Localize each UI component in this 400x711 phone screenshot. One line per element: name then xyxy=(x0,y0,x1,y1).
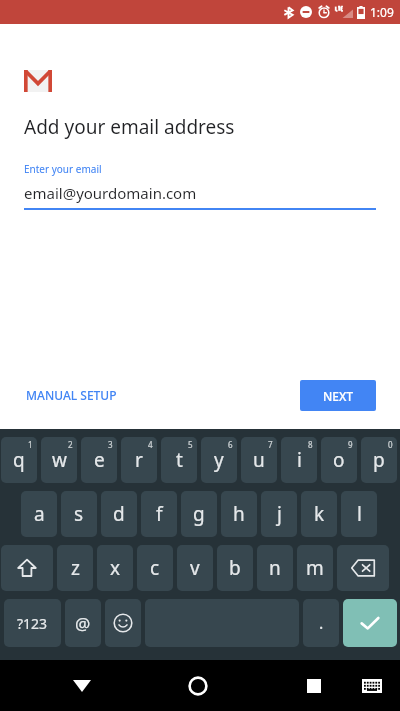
button[interactable]: . xyxy=(303,599,339,647)
staticText: 2 xyxy=(68,439,73,450)
staticText: q xyxy=(13,447,25,473)
button[interactable]: k xyxy=(301,491,337,537)
button[interactable]: Switch keyboard xyxy=(352,666,392,706)
staticText: 8 xyxy=(308,439,313,450)
staticText: o xyxy=(333,447,345,473)
button[interactable]: w xyxy=(41,437,77,483)
button[interactable]: p xyxy=(361,437,397,483)
staticText: @ xyxy=(75,612,91,635)
button[interactable]: s xyxy=(61,491,97,537)
staticText: 3 xyxy=(108,439,113,450)
staticText: z xyxy=(71,555,80,581)
staticText: 1:09 xyxy=(370,4,394,20)
button[interactable]: y xyxy=(201,437,237,483)
button[interactable]: l xyxy=(341,491,377,537)
staticText: m xyxy=(306,555,324,581)
button[interactable]: j xyxy=(261,491,297,537)
button[interactable]: ?123 xyxy=(4,599,61,647)
button[interactable]: c xyxy=(137,545,173,591)
button[interactable]: x xyxy=(97,545,133,591)
button[interactable]: Shift xyxy=(1,545,53,591)
staticText: b xyxy=(229,555,241,581)
staticText: y xyxy=(214,447,224,473)
button[interactable]: Enter your email xyxy=(24,162,376,210)
button[interactable]: e xyxy=(81,437,117,483)
staticText: 9 xyxy=(348,439,353,450)
staticText: v xyxy=(190,555,200,581)
button[interactable]: m xyxy=(297,545,333,591)
staticText: n xyxy=(269,555,281,581)
staticText: 5 xyxy=(188,439,193,450)
button[interactable]: h xyxy=(221,491,257,537)
button[interactable]: r xyxy=(121,437,157,483)
staticText: t xyxy=(176,447,183,473)
staticText: NEXT xyxy=(323,388,354,404)
button[interactable]: Back xyxy=(58,662,106,710)
staticText: x xyxy=(110,555,121,581)
button[interactable]: n xyxy=(257,545,293,591)
staticText: k xyxy=(314,501,325,527)
staticText: s xyxy=(74,501,84,527)
button[interactable]: b xyxy=(217,545,253,591)
staticText: 1 xyxy=(28,439,33,450)
button[interactable]: f xyxy=(141,491,177,537)
button[interactable]: a xyxy=(21,491,57,537)
button[interactable]: v xyxy=(177,545,213,591)
staticText: . xyxy=(319,612,324,634)
staticText: f xyxy=(156,501,163,527)
staticText: h xyxy=(233,501,245,527)
staticText: email@yourdomain.com xyxy=(24,183,197,203)
button[interactable]: NEXT xyxy=(300,380,376,411)
button[interactable]: t xyxy=(161,437,197,483)
button[interactable]: q xyxy=(1,437,37,483)
staticText: 7 xyxy=(268,439,273,450)
staticText: e xyxy=(94,447,105,473)
staticText: c xyxy=(150,555,160,581)
staticText: ?123 xyxy=(17,614,48,633)
button[interactable]: Recents xyxy=(290,662,338,710)
staticText: 6 xyxy=(228,439,233,450)
staticText: i xyxy=(297,447,302,473)
staticText: Add your email address xyxy=(24,114,235,140)
button[interactable]: MANUAL SETUP xyxy=(24,379,119,411)
button[interactable]: Emoji xyxy=(105,599,141,647)
staticText: w xyxy=(52,447,67,473)
button[interactable]: Backspace xyxy=(337,545,389,591)
staticText: p xyxy=(373,447,385,473)
button[interactable]: z xyxy=(57,545,93,591)
button[interactable]: i xyxy=(281,437,317,483)
button[interactable]: Home xyxy=(174,662,222,710)
staticText: r xyxy=(135,447,143,473)
staticText: 4 xyxy=(148,439,153,450)
staticText: d xyxy=(113,501,125,527)
staticText: a xyxy=(34,501,45,527)
button[interactable]: d xyxy=(101,491,137,537)
staticText: u xyxy=(253,447,265,473)
staticText: Enter your email xyxy=(24,162,102,176)
staticText: 0 xyxy=(388,439,393,450)
staticText: j xyxy=(277,501,282,527)
button[interactable]: o xyxy=(321,437,357,483)
staticText: g xyxy=(193,501,205,527)
staticText: l xyxy=(357,501,362,527)
button[interactable]: Enter xyxy=(343,599,397,647)
button[interactable]: g xyxy=(181,491,217,537)
button[interactable]: @ xyxy=(65,599,101,647)
staticText: MANUAL SETUP xyxy=(26,387,117,403)
button[interactable]: u xyxy=(241,437,277,483)
